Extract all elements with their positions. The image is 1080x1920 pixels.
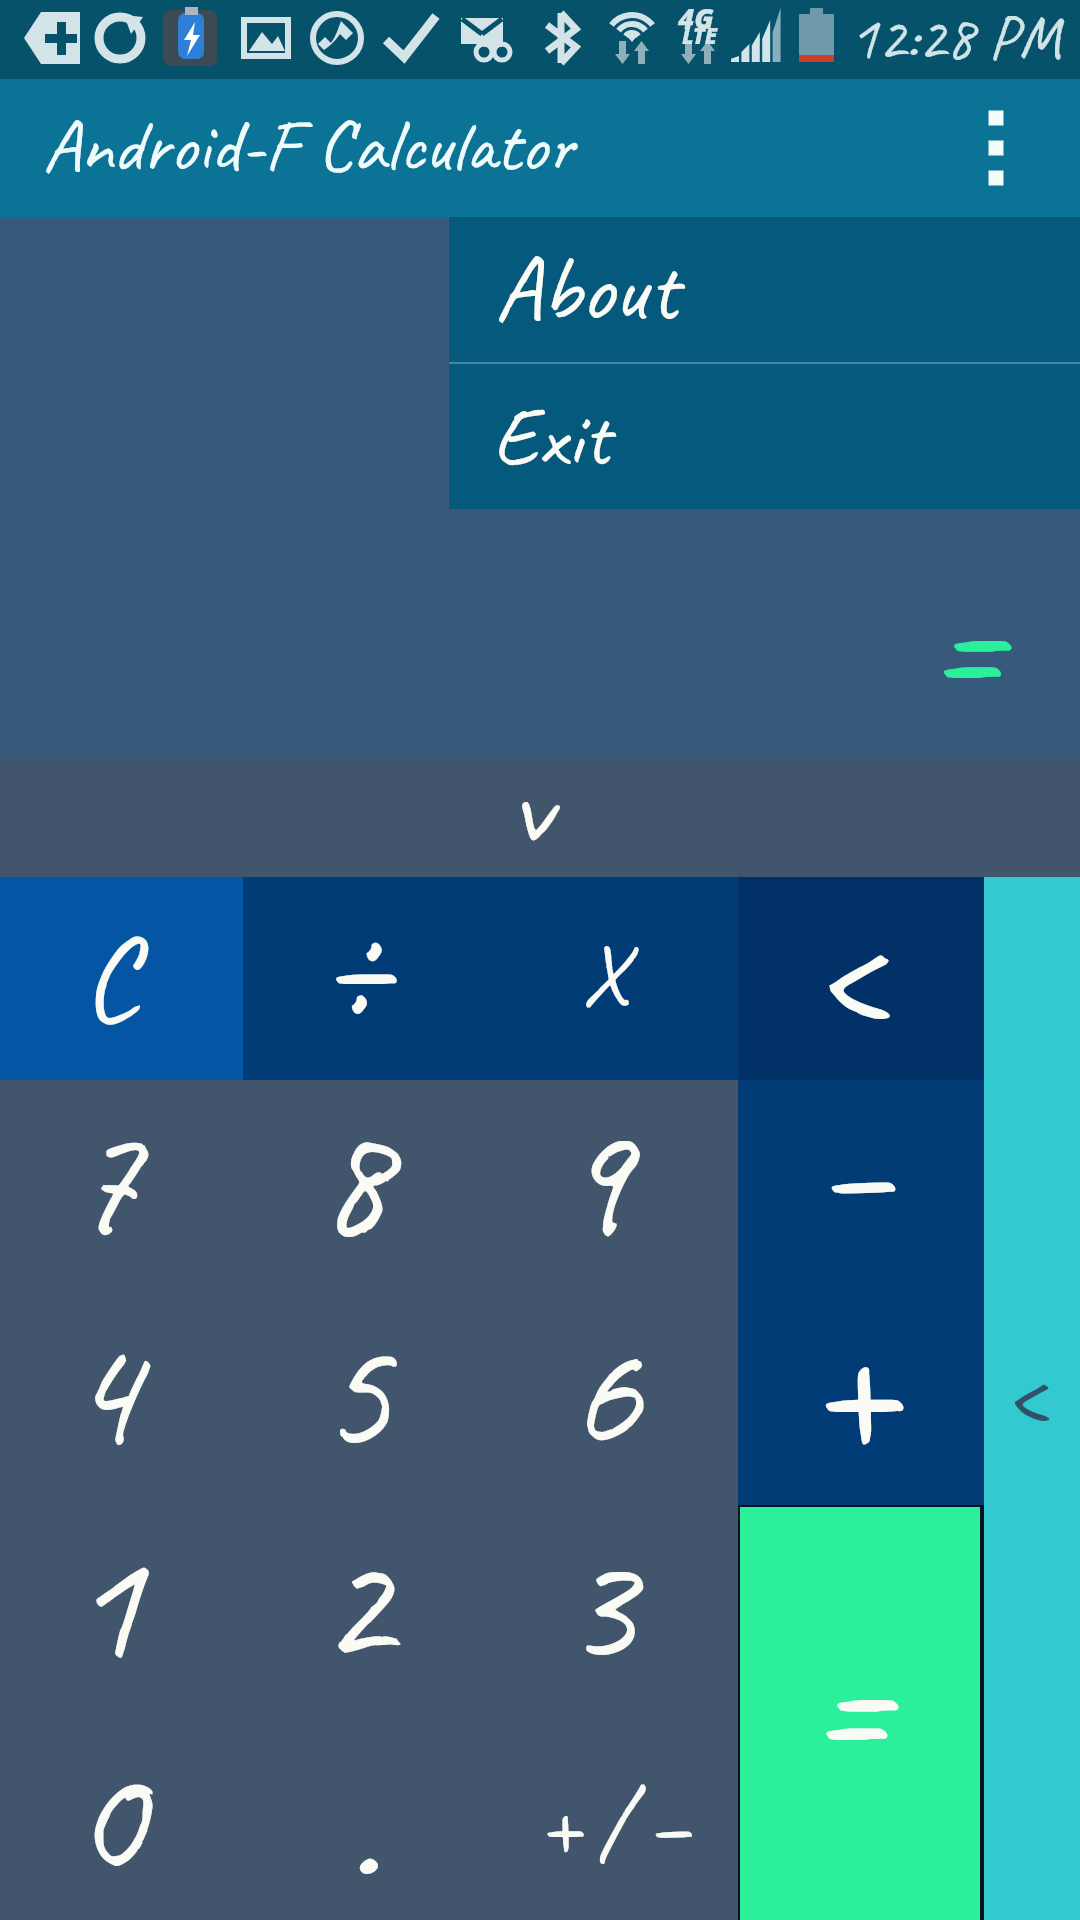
button[interactable]: About xyxy=(449,217,1080,362)
staticText: = xyxy=(924,524,1007,758)
button[interactable]: Exit xyxy=(449,364,1080,509)
staticText: 4G xyxy=(678,0,714,37)
staticText: . xyxy=(347,1729,379,1920)
button[interactable]: 9 xyxy=(492,1082,738,1292)
staticText: Exit xyxy=(492,384,610,489)
staticText: 1 xyxy=(70,1504,142,1703)
staticText: 9 xyxy=(558,1080,630,1279)
button[interactable]: Clear xyxy=(0,879,243,1082)
staticText: +/− xyxy=(537,1761,705,1884)
button[interactable]: Multiply xyxy=(490,879,738,1082)
button[interactable]: 2 xyxy=(246,1502,492,1712)
button[interactable]: Plus xyxy=(738,1294,984,1507)
staticText: + xyxy=(803,1248,897,1513)
staticText: C xyxy=(82,905,138,1054)
button[interactable]: 4 xyxy=(0,1292,246,1502)
button[interactable]: 5 xyxy=(246,1292,492,1502)
staticText: 0 xyxy=(72,1717,144,1916)
staticText: < xyxy=(1002,1327,1048,1457)
staticText: = xyxy=(805,1577,894,1826)
button[interactable]: . xyxy=(246,1712,492,1920)
staticText: 12:28 PM xyxy=(849,0,1061,76)
staticText: 2 xyxy=(319,1504,391,1703)
staticText: Android-F Calculator xyxy=(42,98,574,193)
button[interactable]: Divide xyxy=(243,879,490,1082)
button[interactable]: +/− xyxy=(492,1712,738,1920)
staticText: 8 xyxy=(317,1079,389,1278)
button[interactable]: Backspace xyxy=(738,879,984,1082)
button[interactable]: Minus xyxy=(738,1082,984,1294)
button[interactable]: 8 xyxy=(246,1082,492,1292)
staticText: < xyxy=(807,855,888,1082)
staticText: 6 xyxy=(568,1292,640,1491)
button[interactable]: 3 xyxy=(492,1502,738,1712)
button[interactable]: Equals xyxy=(738,1509,984,1920)
button[interactable]: 1 xyxy=(0,1502,246,1712)
button[interactable]: More options xyxy=(948,79,1080,217)
staticText: ÷ xyxy=(318,857,392,1064)
button[interactable]: Expand history xyxy=(0,757,1080,877)
staticText: X xyxy=(581,920,627,1028)
staticText: 7 xyxy=(69,1080,141,1279)
staticText: 4 xyxy=(66,1292,138,1491)
staticText: About xyxy=(494,231,678,347)
staticText: v xyxy=(508,726,550,885)
button[interactable]: 6 xyxy=(492,1292,738,1502)
staticText: − xyxy=(813,1059,890,1276)
button[interactable]: 7 xyxy=(0,1082,246,1292)
button[interactable]: 0 xyxy=(0,1712,246,1920)
staticText: 5 xyxy=(319,1293,391,1492)
staticText: LTE xyxy=(682,20,718,50)
staticText: 3 xyxy=(563,1505,635,1704)
button[interactable]: Previous result xyxy=(984,879,1080,1920)
